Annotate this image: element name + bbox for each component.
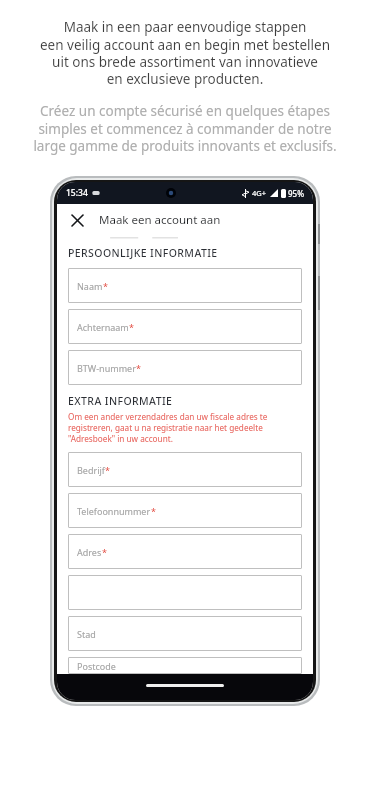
staticText: Postcode	[77, 660, 116, 672]
staticText: *	[103, 280, 108, 292]
button[interactable]: Adres	[68, 534, 302, 569]
staticText: Naam	[77, 280, 103, 292]
staticText: 4G+	[252, 188, 267, 198]
staticText: PERSOONLIJKE INFORMATIE	[68, 246, 218, 260]
staticText: Maak een account aan	[99, 212, 221, 228]
button[interactable]: Bedrijf	[68, 452, 302, 487]
staticText: Adres	[77, 546, 102, 558]
button[interactable]: BTW-nummer	[68, 350, 302, 385]
staticText: *	[105, 464, 110, 476]
staticText: Telefoonnummer	[77, 505, 151, 517]
button[interactable]: Naam	[68, 268, 302, 303]
button[interactable]: Postcode	[68, 657, 302, 674]
staticText: *	[129, 321, 134, 333]
staticText: Achternaam	[77, 321, 129, 333]
staticText: Bedrijf	[77, 464, 105, 476]
staticText: Créez un compte sécurisé en quelques éta…	[6, 102, 364, 155]
button[interactable]: Stad	[68, 616, 302, 651]
staticText: EXTRA INFORMATIE	[68, 394, 173, 408]
staticText: Om een ander verzendadres dan uw fiscale…	[68, 411, 268, 444]
staticText: 95%	[288, 188, 304, 199]
button[interactable]: Telefoonnummer	[68, 493, 302, 528]
staticText: Maak in een paar eenvoudige stappen een …	[6, 18, 364, 88]
button[interactable]	[68, 575, 302, 610]
staticText: 15:34	[66, 187, 88, 199]
button[interactable]: Achternaam	[68, 309, 302, 344]
staticText: BTW-nummer	[77, 362, 136, 374]
button[interactable]: Sluiten	[65, 208, 89, 232]
staticText: *	[151, 505, 156, 517]
staticText: *	[136, 362, 141, 374]
staticText: Stad	[77, 628, 96, 640]
staticText: *	[102, 546, 107, 558]
